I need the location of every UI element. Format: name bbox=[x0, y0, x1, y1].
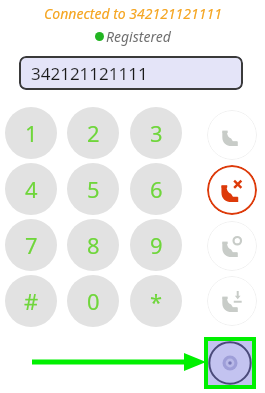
staticText: # bbox=[24, 286, 39, 316]
staticText: 342121121111 bbox=[31, 62, 148, 85]
staticText: 7 bbox=[25, 230, 38, 260]
staticText: 9 bbox=[150, 230, 163, 260]
button[interactable]: 342121121111 bbox=[19, 56, 243, 90]
button[interactable]: Transfer call bbox=[207, 276, 257, 326]
staticText: * bbox=[150, 286, 163, 316]
button[interactable]: Hold call bbox=[207, 221, 257, 271]
button[interactable]: # bbox=[5, 275, 57, 327]
button[interactable]: 3 bbox=[130, 107, 182, 159]
button[interactable]: 6 bbox=[130, 163, 182, 215]
button[interactable]: * bbox=[130, 275, 182, 327]
staticText: 3 bbox=[150, 118, 163, 148]
staticText: 8 bbox=[87, 230, 100, 260]
button[interactable]: 4 bbox=[5, 163, 57, 215]
button[interactable]: 5 bbox=[67, 163, 119, 215]
staticText: 1 bbox=[25, 118, 38, 148]
button[interactable]: 1 bbox=[5, 107, 57, 159]
staticText: Registered bbox=[106, 27, 171, 46]
staticText: 0 bbox=[87, 286, 100, 316]
button[interactable]: Call bbox=[207, 110, 257, 160]
button[interactable]: 2 bbox=[67, 107, 119, 159]
staticText: 5 bbox=[87, 174, 100, 204]
button[interactable]: 8 bbox=[67, 219, 119, 271]
button[interactable]: 0 bbox=[67, 275, 119, 327]
staticText: 4 bbox=[25, 174, 38, 204]
staticText: Connected to 342121121111 bbox=[44, 4, 222, 23]
button[interactable]: Record bbox=[208, 341, 252, 385]
button[interactable]: 9 bbox=[130, 219, 182, 271]
staticText: 2 bbox=[87, 118, 100, 148]
button[interactable]: End call bbox=[207, 165, 257, 215]
button[interactable]: 7 bbox=[5, 219, 57, 271]
staticText: 6 bbox=[150, 174, 163, 204]
